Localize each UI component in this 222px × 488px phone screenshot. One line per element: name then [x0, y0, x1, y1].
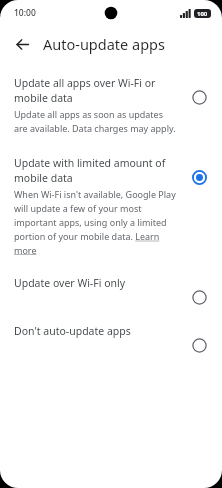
staticText: Update all apps as soon as updates are a… — [14, 108, 178, 134]
staticText: Don't auto-update apps — [14, 324, 131, 338]
staticText: 100 — [197, 10, 208, 18]
button[interactable]: Update over Wi-Fi only — [0, 274, 222, 310]
button[interactable]: Update with limited amount of mobile dat… — [0, 154, 222, 258]
staticText: Update all apps over Wi-Fi or mobile dat… — [14, 76, 178, 105]
button[interactable]: Update all apps over Wi-Fi or mobile dat… — [0, 74, 222, 136]
button[interactable]: Back — [8, 30, 36, 58]
staticText: 10:00 — [14, 7, 36, 19]
button[interactable]: Don't auto-update apps — [0, 322, 222, 358]
staticText: Auto-update apps — [43, 34, 165, 54]
staticText: Update with limited amount of mobile dat… — [14, 156, 178, 185]
staticText: When Wi-Fi isn't available, Google Play … — [14, 188, 178, 256]
staticText: Update over Wi-Fi only — [14, 276, 126, 290]
